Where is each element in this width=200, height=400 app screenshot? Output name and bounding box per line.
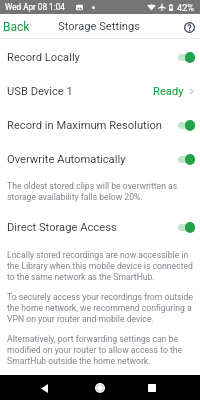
button[interactable]: USB Device 1 [0,74,200,108]
button[interactable]: Record Locally [0,40,200,74]
staticText: Wed Apr 08 1:04 [5,2,65,12]
button[interactable]: Help [180,17,200,37]
button[interactable]: Recent apps [140,376,164,400]
staticText: Ready [153,85,184,98]
staticText: 42% [177,2,195,13]
staticText: Direct Storage Access [7,221,117,234]
button[interactable]: Overwrite Automatically [0,142,200,176]
button[interactable]: Back [0,16,33,38]
staticText: Locally stored recordings are now access… [7,250,196,282]
button[interactable]: Home [88,376,112,400]
staticText: Alternatively, port forwarding settings … [7,334,196,366]
staticText: To securely access your recordings from … [7,292,196,324]
staticText: Record in Maximum Resolution [7,119,163,132]
staticText: Back [3,20,30,34]
button[interactable]: Direct Storage Access [0,210,200,244]
staticText: Overwrite Automatically [7,153,126,166]
button[interactable]: Back [32,376,56,400]
staticText: USB Device 1 [7,85,73,98]
button[interactable]: Record in Maximum Resolution [0,108,200,142]
staticText: The oldest stored clips will be overwrit… [7,181,196,202]
staticText: Storage Settings [58,20,141,33]
staticText: Record Locally [7,51,80,64]
